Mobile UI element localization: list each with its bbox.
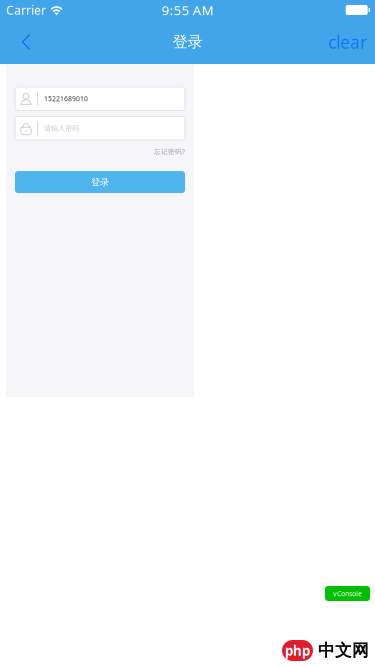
staticText: vConsole xyxy=(333,589,362,598)
staticText: 请输入密码 xyxy=(44,124,79,133)
button[interactable]: 登录 xyxy=(15,171,185,193)
button[interactable]: Back xyxy=(0,20,41,64)
staticText: 15221689010 xyxy=(44,94,88,103)
staticText: 中文网 xyxy=(318,640,369,661)
staticText: 9:55 AM xyxy=(161,1,213,19)
staticText: clear xyxy=(328,30,367,54)
staticText: 登录 xyxy=(172,32,202,52)
staticText: 忘记密码? xyxy=(154,147,185,156)
button[interactable]: clear xyxy=(318,20,375,64)
staticText: php xyxy=(285,641,310,660)
staticText: Carrier xyxy=(6,2,46,18)
staticText: 登录 xyxy=(91,176,109,188)
button[interactable]: vConsole xyxy=(325,586,370,601)
button[interactable]: 忘记密码? xyxy=(154,147,185,156)
